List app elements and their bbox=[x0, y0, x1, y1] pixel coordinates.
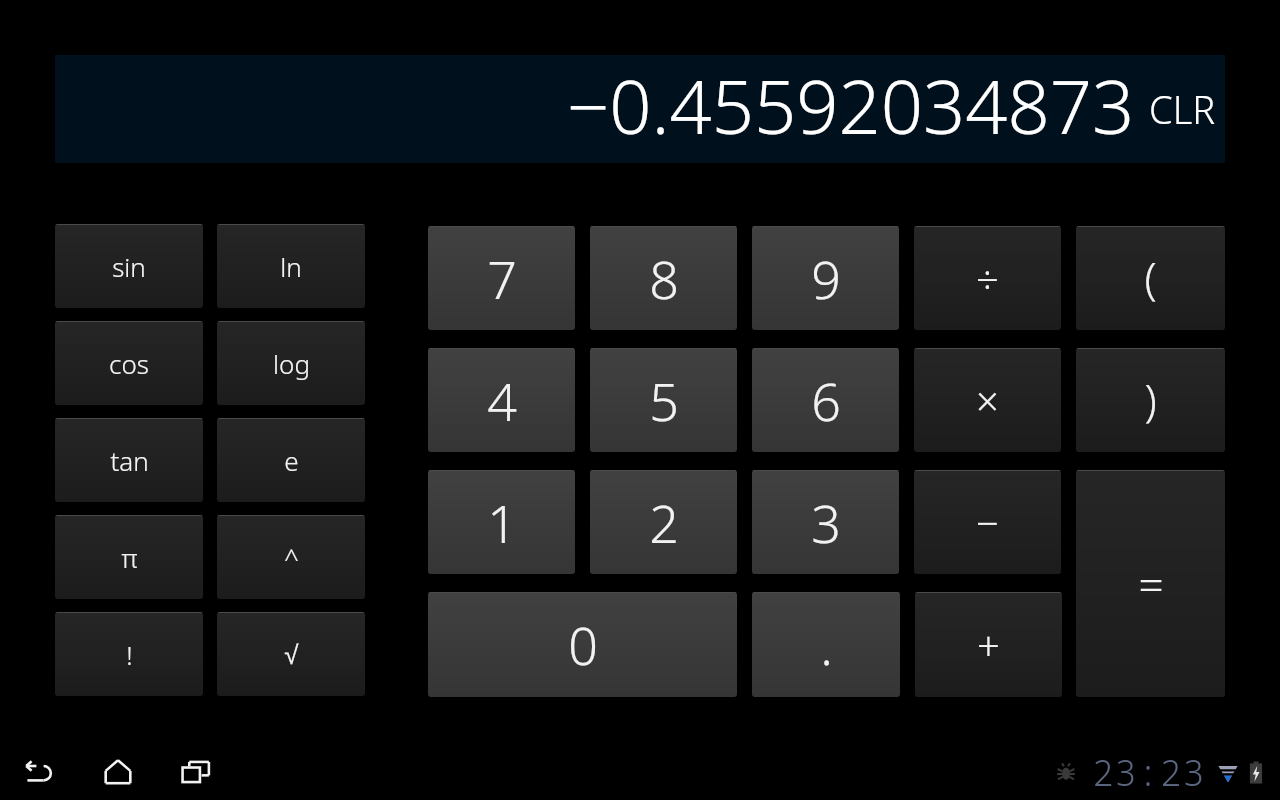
button[interactable]: Recent apps bbox=[174, 750, 218, 794]
button[interactable]: = bbox=[1076, 470, 1225, 697]
button[interactable]: cos bbox=[55, 321, 203, 405]
staticText: = bbox=[1138, 554, 1164, 614]
button[interactable]: π bbox=[55, 515, 203, 599]
button[interactable]: 4 bbox=[428, 348, 575, 452]
button[interactable]: 1 bbox=[428, 470, 575, 574]
button[interactable]: √ bbox=[217, 612, 365, 696]
button[interactable]: ^ bbox=[217, 515, 365, 599]
staticText: π bbox=[121, 540, 138, 575]
staticText: CLR bbox=[1149, 83, 1216, 135]
button[interactable]: ) bbox=[1076, 348, 1225, 452]
staticText: 6 bbox=[811, 365, 841, 436]
staticText: 7 bbox=[487, 243, 517, 314]
staticText: ! bbox=[126, 637, 133, 672]
button[interactable]: 7 bbox=[428, 226, 575, 330]
staticText: 0 bbox=[568, 609, 598, 680]
staticText: ^ bbox=[284, 540, 299, 575]
button[interactable]: − bbox=[914, 470, 1061, 574]
button[interactable]: 9 bbox=[752, 226, 899, 330]
staticText: 1 bbox=[487, 487, 517, 558]
staticText: −0.45592034873 bbox=[567, 55, 1135, 143]
staticText: 5 bbox=[649, 365, 679, 436]
button[interactable]: 0 bbox=[428, 592, 737, 697]
button[interactable]: ( bbox=[1076, 226, 1225, 330]
button[interactable]: CLR bbox=[1149, 83, 1216, 135]
button[interactable]: ln bbox=[217, 224, 365, 308]
button[interactable]: 5 bbox=[590, 348, 737, 452]
staticText: + bbox=[977, 618, 1000, 672]
staticText: tan bbox=[110, 443, 149, 478]
staticText: 8 bbox=[649, 243, 679, 314]
staticText: 4 bbox=[487, 365, 517, 436]
staticText: ( bbox=[1144, 248, 1157, 308]
staticText: ) bbox=[1144, 370, 1157, 430]
staticText: 23:23 bbox=[1092, 748, 1206, 797]
button[interactable]: × bbox=[914, 348, 1061, 452]
button[interactable]: 8 bbox=[590, 226, 737, 330]
staticText: √ bbox=[284, 640, 299, 669]
button[interactable]: 3 bbox=[752, 470, 899, 574]
button[interactable]: 6 bbox=[752, 348, 899, 452]
button[interactable]: tan bbox=[55, 418, 203, 502]
button[interactable]: + bbox=[915, 592, 1062, 697]
button[interactable]: sin bbox=[55, 224, 203, 308]
button[interactable]: −0.45592034873 bbox=[55, 55, 1225, 163]
staticText: cos bbox=[109, 346, 149, 381]
staticText: 9 bbox=[811, 243, 841, 314]
staticText: ln bbox=[280, 249, 302, 284]
button[interactable]: ÷ bbox=[914, 226, 1061, 330]
button[interactable]: . bbox=[752, 592, 900, 697]
button[interactable]: Back bbox=[18, 750, 62, 794]
staticText: − bbox=[976, 495, 999, 549]
staticText: e bbox=[284, 443, 299, 478]
button[interactable]: 2 bbox=[590, 470, 737, 574]
staticText: 2 bbox=[649, 487, 679, 558]
staticText: ÷ bbox=[976, 251, 999, 305]
staticText: × bbox=[976, 373, 999, 427]
staticText: log bbox=[273, 346, 310, 381]
button[interactable]: e bbox=[217, 418, 365, 502]
button[interactable]: log bbox=[217, 321, 365, 405]
staticText: 3 bbox=[811, 487, 841, 558]
button[interactable]: Home bbox=[96, 750, 140, 794]
staticText: sin bbox=[112, 249, 146, 284]
staticText: . bbox=[820, 609, 833, 680]
button[interactable]: ! bbox=[55, 612, 203, 696]
